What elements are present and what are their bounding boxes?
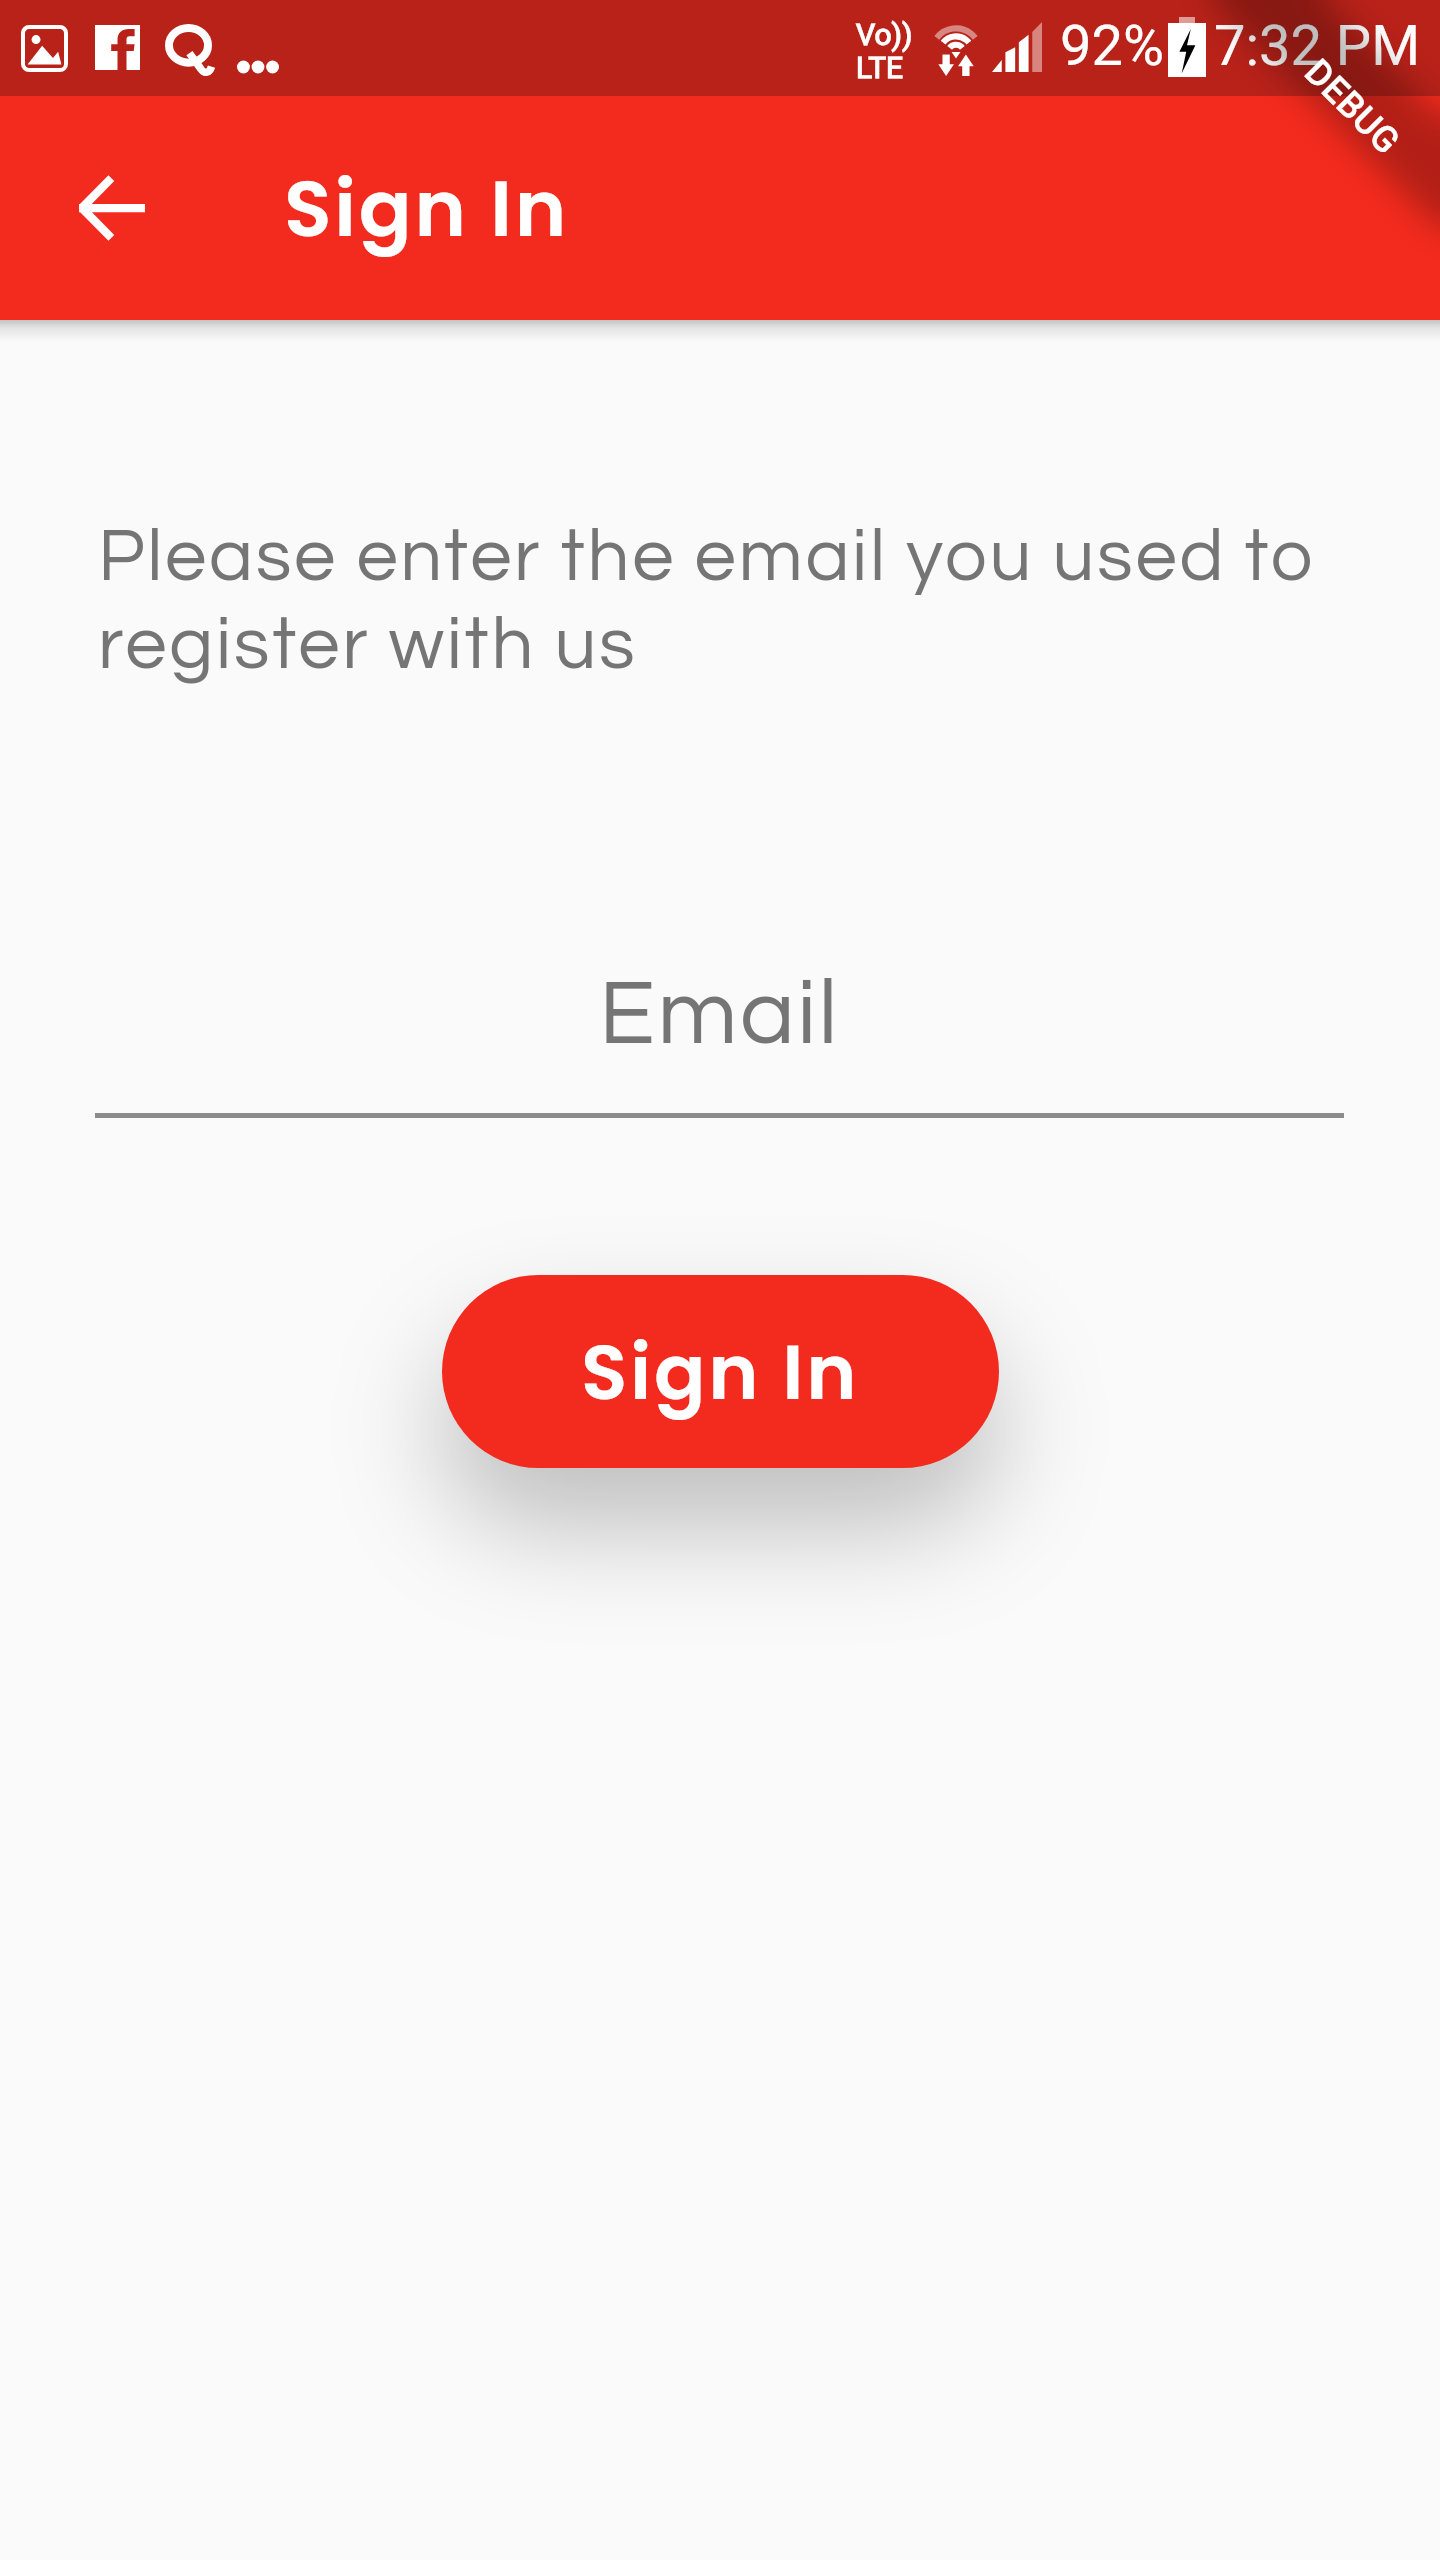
staticText: Vo)) [856,17,913,52]
staticText: Sign In [581,1319,860,1425]
button[interactable]: Back [16,112,208,304]
staticText: 92% [1060,13,1164,79]
staticText: LTE [856,50,904,85]
button[interactable]: Sign In [442,1275,999,1468]
staticText: Email [95,968,1344,1063]
button[interactable]: Email [95,920,1344,1118]
staticText: 7:32 PM [1214,13,1421,79]
staticText: DEBUG [1297,52,1408,163]
staticText: Please enter the email you used to regis… [98,519,1353,684]
staticText: Sign In [284,154,570,263]
